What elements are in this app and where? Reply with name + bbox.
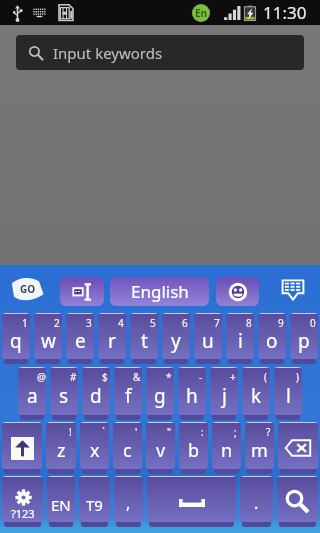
button[interactable]: Input keywords <box>16 35 304 70</box>
staticText: z <box>57 438 66 463</box>
staticText: 1 <box>22 316 28 330</box>
staticText: k <box>251 383 262 409</box>
button[interactable]: 5 <box>130 313 158 364</box>
staticText: t <box>141 328 148 354</box>
button[interactable]: . <box>240 476 273 527</box>
button[interactable] <box>2 422 42 474</box>
staticText: e <box>75 328 86 354</box>
staticText: 7 <box>214 316 220 330</box>
button[interactable]: ( <box>242 367 270 420</box>
staticText: j <box>222 383 227 409</box>
staticText: 5 <box>150 316 156 330</box>
button[interactable]: 8 <box>226 313 254 364</box>
staticText: 9 <box>278 316 284 330</box>
button[interactable] <box>147 476 236 527</box>
button[interactable]: 6 <box>162 313 190 364</box>
button[interactable]: $ <box>82 367 110 420</box>
button[interactable]: EN <box>47 476 75 527</box>
button[interactable]: English <box>110 277 209 306</box>
staticText: English <box>131 280 189 303</box>
staticText: m <box>251 438 268 463</box>
button[interactable]: ; <box>212 422 241 474</box>
staticText: 0 <box>310 316 316 330</box>
button[interactable]: 0 <box>290 313 318 364</box>
button[interactable]: Emoji <box>216 277 259 306</box>
staticText: n <box>221 438 233 463</box>
staticText: l <box>286 383 291 409</box>
staticText: ? <box>266 425 271 439</box>
staticText: 2 <box>54 316 60 330</box>
staticText: 8 <box>246 316 252 330</box>
staticText: . <box>254 492 259 514</box>
staticText: EN <box>51 495 71 515</box>
staticText: c <box>123 438 132 463</box>
staticText: v <box>156 438 166 463</box>
button[interactable]: Input method <box>60 277 104 306</box>
staticText: + <box>230 370 236 384</box>
button[interactable]: ' <box>113 422 142 474</box>
button[interactable]: , <box>114 476 143 527</box>
button[interactable]: 3 <box>66 313 94 364</box>
staticText: T9 <box>86 495 103 515</box>
staticText: g <box>154 383 166 409</box>
staticText: , <box>126 492 131 514</box>
staticText: d <box>90 383 102 409</box>
staticText: s <box>59 383 69 409</box>
staticText: f <box>125 383 132 409</box>
staticText: & <box>133 370 141 384</box>
staticText: i <box>238 328 243 354</box>
staticText: r <box>108 328 116 354</box>
button[interactable]: 1 <box>2 313 30 364</box>
staticText: ; <box>234 425 237 439</box>
button[interactable]: 2 <box>34 313 62 364</box>
button[interactable]: ?123 <box>2 476 43 527</box>
button[interactable] <box>278 422 318 474</box>
staticText: 6 <box>182 316 188 330</box>
staticText: : <box>201 425 204 439</box>
button[interactable]: Hide keyboard <box>274 273 312 305</box>
button[interactable]: ) <box>274 367 302 420</box>
button[interactable]: 9 <box>258 313 286 364</box>
staticText: GO <box>20 282 36 296</box>
staticText: " <box>167 425 172 439</box>
staticText: ( <box>264 370 267 384</box>
staticText: a <box>27 383 38 409</box>
button[interactable]: + <box>210 367 238 420</box>
staticText: En <box>195 6 208 20</box>
staticText: * <box>166 370 172 384</box>
staticText: 11:30 <box>263 1 307 24</box>
button[interactable]: GO Keyboard <box>8 273 46 305</box>
staticText: w <box>41 328 56 354</box>
staticText: ) <box>296 370 299 384</box>
button[interactable]: ` <box>80 422 109 474</box>
staticText: - <box>199 370 203 384</box>
button[interactable]: 4 <box>98 313 126 364</box>
staticText: b <box>188 438 200 463</box>
staticText: ` <box>102 425 105 439</box>
staticText: @ <box>37 370 46 384</box>
button[interactable]: ! <box>46 422 76 474</box>
staticText: y <box>171 328 181 354</box>
staticText: u <box>202 328 214 354</box>
staticText: ?123 <box>11 506 35 521</box>
staticText: ! <box>69 425 72 439</box>
staticText: x <box>90 438 100 463</box>
staticText: ' <box>135 425 138 439</box>
staticText: $ <box>102 370 108 384</box>
button[interactable]: & <box>114 367 142 420</box>
button[interactable]: @ <box>18 367 46 420</box>
button[interactable]: - <box>178 367 206 420</box>
button[interactable] <box>277 476 318 527</box>
staticText: h <box>186 383 198 409</box>
button[interactable]: : <box>179 422 208 474</box>
button[interactable]: ? <box>245 422 274 474</box>
staticText: # <box>70 370 77 384</box>
button[interactable]: * <box>146 367 174 420</box>
button[interactable]: " <box>146 422 175 474</box>
button[interactable]: T9 <box>79 476 110 527</box>
staticText: Input keywords <box>53 43 163 63</box>
button[interactable]: 7 <box>194 313 222 364</box>
staticText: q <box>10 328 22 354</box>
staticText: 4 <box>118 316 124 330</box>
button[interactable]: # <box>50 367 78 420</box>
